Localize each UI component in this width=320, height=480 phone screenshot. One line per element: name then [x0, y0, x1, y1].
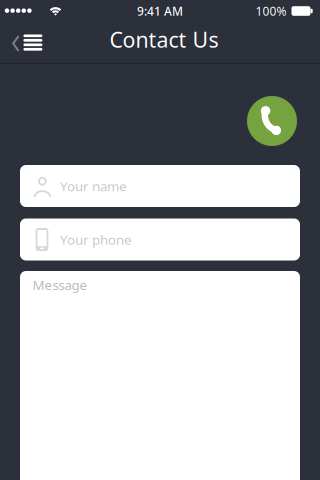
staticText: 9:41 AM [137, 3, 183, 19]
button[interactable]: Message [20, 271, 300, 480]
staticText: Contact Us [109, 25, 218, 54]
staticText: Your name [60, 177, 127, 195]
staticText: 100% [255, 3, 286, 19]
staticText: Message [32, 276, 87, 294]
button[interactable]: Your phone [20, 218, 300, 260]
button[interactable] [247, 96, 297, 146]
staticText: Your phone [60, 231, 132, 248]
button[interactable] [4, 21, 48, 65]
button[interactable]: Your name [20, 165, 300, 207]
